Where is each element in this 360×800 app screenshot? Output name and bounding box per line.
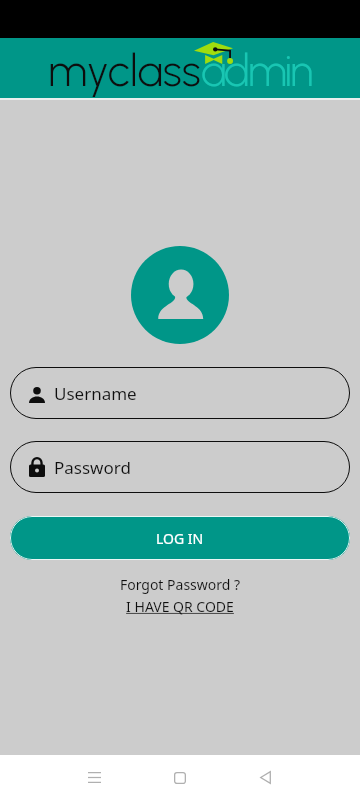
button[interactable]: Username <box>10 367 350 419</box>
staticText: Password <box>54 456 131 479</box>
staticText: Username <box>54 382 137 405</box>
button[interactable]: Forgot Password ? <box>0 575 360 594</box>
button[interactable]: I HAVE QR CODE <box>0 597 360 616</box>
button[interactable]: Home <box>156 755 204 800</box>
staticText: myclass <box>48 44 201 97</box>
button[interactable]: Password <box>10 441 350 493</box>
button[interactable]: LOG IN <box>10 516 350 560</box>
staticText: LOG IN <box>156 529 204 548</box>
button[interactable]: Back <box>241 755 289 800</box>
button[interactable]: Recent apps <box>70 755 118 800</box>
staticText: admin <box>201 44 312 97</box>
